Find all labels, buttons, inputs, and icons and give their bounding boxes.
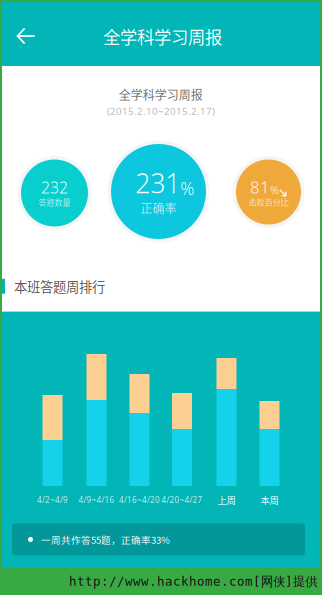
staticText: 81 bbox=[250, 176, 270, 198]
button[interactable]: Back bbox=[3, 14, 49, 58]
staticText: % bbox=[180, 176, 194, 200]
staticText: 答题数量 bbox=[38, 196, 70, 208]
staticText: 232 bbox=[41, 177, 68, 198]
staticText: 本班答题周排行 bbox=[14, 277, 105, 296]
staticText: 击败百分比 bbox=[248, 195, 288, 208]
staticText: 4/9~4/16 bbox=[78, 495, 114, 505]
staticText: http://www.hackhome.com[网侠]提供 bbox=[69, 574, 317, 589]
staticText: 全学科学习周报 bbox=[103, 24, 222, 49]
staticText: % bbox=[270, 182, 279, 198]
staticText: 4/2~4/9 bbox=[37, 495, 68, 505]
staticText: 4/16~4/20 bbox=[119, 495, 160, 505]
staticText: 一周共作答55题，正确率33% bbox=[41, 532, 170, 546]
staticText: 4/20~4/27 bbox=[161, 495, 202, 505]
staticText: 上周 bbox=[217, 493, 235, 507]
staticText: 全学科学习周报 bbox=[119, 86, 203, 103]
staticText: 本周 bbox=[260, 493, 278, 507]
staticText: 231 bbox=[135, 165, 180, 201]
staticText: (2015.2.10~2015.2.17) bbox=[107, 104, 215, 118]
staticText: 正确率 bbox=[140, 199, 176, 217]
